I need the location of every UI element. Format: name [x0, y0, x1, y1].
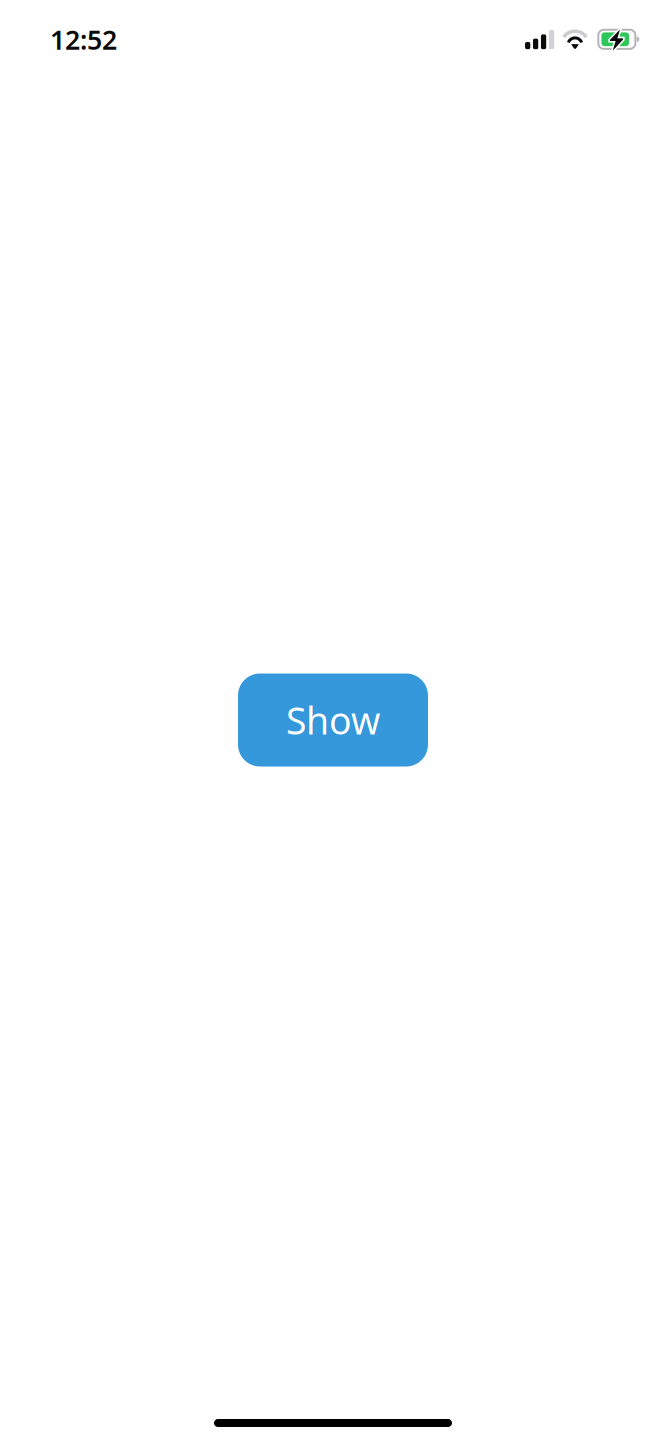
- button[interactable]: Show: [238, 673, 428, 766]
- staticText: 12:52: [50, 22, 117, 57]
- staticText: Show: [286, 695, 380, 745]
